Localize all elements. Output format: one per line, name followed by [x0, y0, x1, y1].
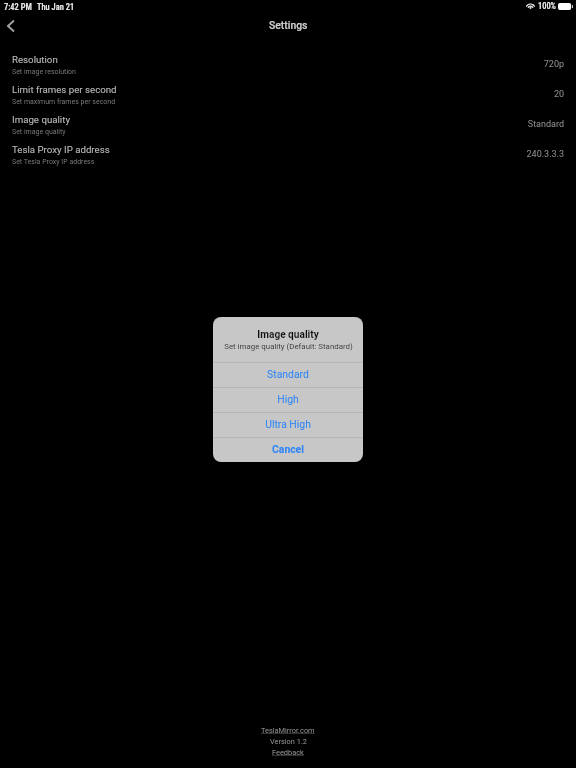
- button[interactable]: Image quality: [0, 111, 576, 141]
- staticText: 20: [0, 89, 564, 100]
- staticText: Image quality: [257, 329, 319, 341]
- button[interactable]: Cancel: [213, 438, 363, 462]
- button[interactable]: High: [213, 388, 363, 412]
- staticText: Standard: [267, 368, 309, 380]
- staticText: Tesla Proxy IP address: [12, 144, 110, 155]
- button[interactable]: Resolution: [0, 51, 576, 81]
- button[interactable]: Tesla Proxy IP address: [0, 141, 576, 171]
- staticText: Settings: [269, 19, 308, 31]
- staticText: Ultra High: [265, 418, 311, 430]
- button[interactable]: Back: [0, 13, 26, 39]
- staticText: Standard: [0, 119, 564, 130]
- button[interactable]: Limit frames per second: [0, 81, 576, 111]
- staticText: Set maximum frames per second: [12, 98, 116, 106]
- staticText: 240.3.3.3: [0, 149, 564, 160]
- staticText: 7:42 PM: [4, 2, 32, 12]
- staticText: 100%: [538, 1, 556, 11]
- staticText: Resolution: [12, 54, 58, 65]
- staticText: Thu Jan 21: [37, 2, 75, 12]
- staticText: Limit frames per second: [12, 84, 117, 95]
- button[interactable]: TeslaMirror.com: [261, 726, 315, 735]
- staticText: Set image resolution: [12, 68, 76, 76]
- staticText: Cancel: [272, 443, 304, 455]
- button[interactable]: Ultra High: [213, 413, 363, 437]
- button[interactable]: Standard: [213, 363, 363, 387]
- staticText: Set image quality (Default: Standard): [224, 342, 353, 351]
- staticText: Set image quality: [12, 128, 66, 136]
- staticText: High: [277, 393, 299, 405]
- staticText: 720p: [0, 59, 564, 70]
- staticText: Version 1.2: [270, 737, 307, 746]
- staticText: Image quality: [12, 114, 70, 125]
- button[interactable]: Feedback: [272, 748, 304, 757]
- staticText: Set Tesla Proxy IP address: [12, 158, 95, 166]
